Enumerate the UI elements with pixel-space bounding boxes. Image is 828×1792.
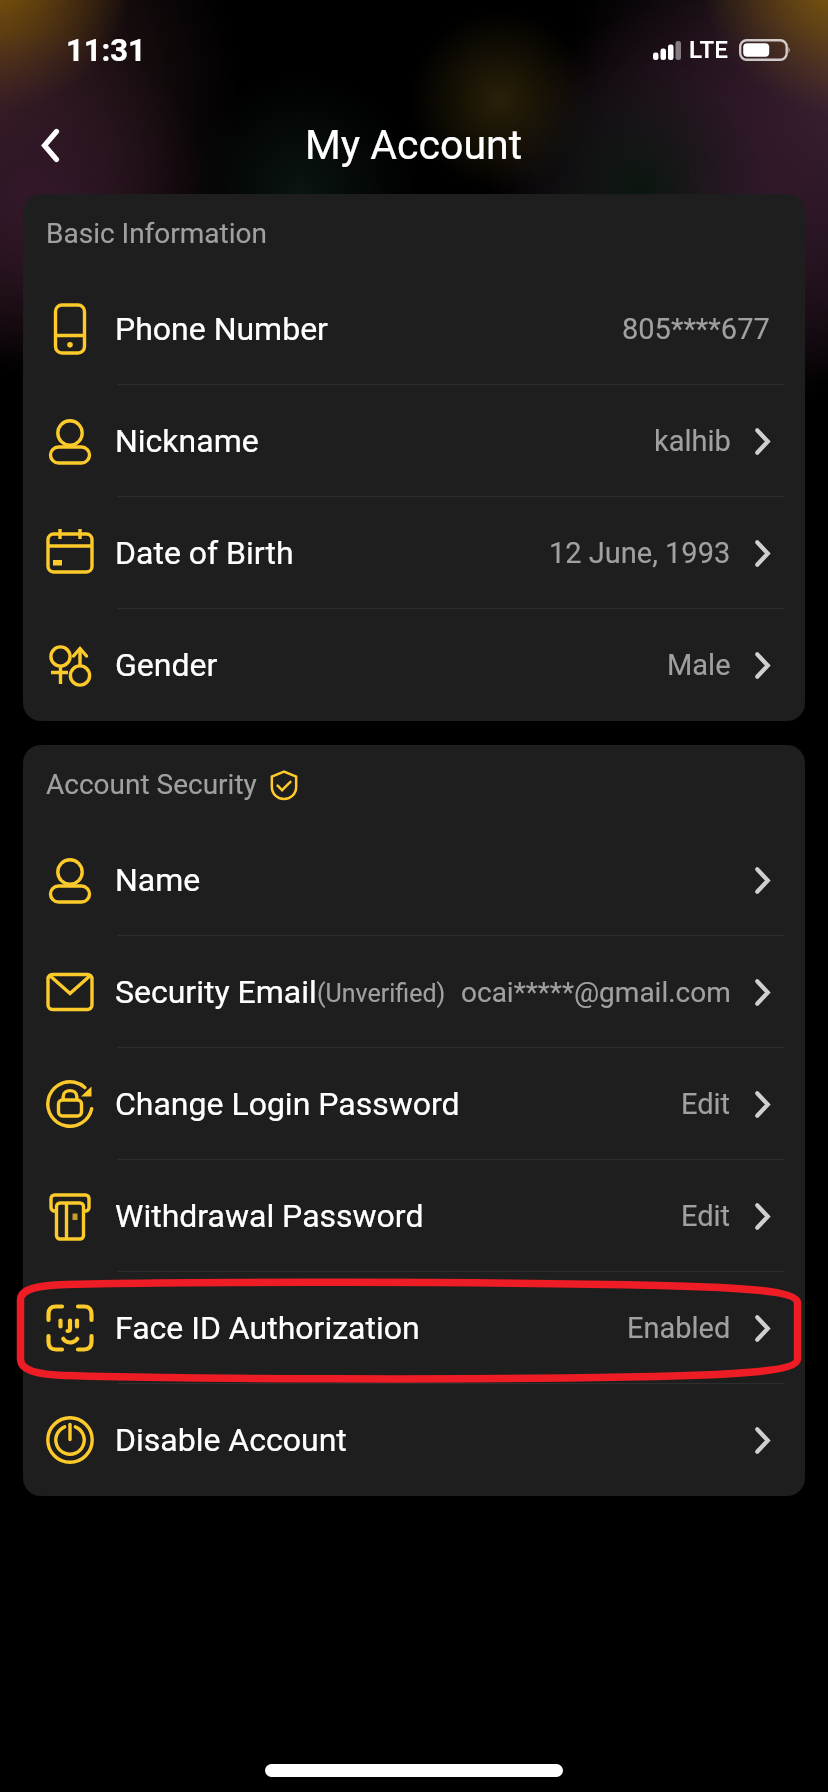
staticText: Nickname [115,422,259,460]
button[interactable]: Security Email [23,936,805,1048]
button[interactable]: Nickname [23,385,805,497]
staticText: Gender [115,646,218,684]
staticText: Withdrawal Password [115,1197,424,1235]
button[interactable]: Date of Birth [23,497,805,609]
staticText: Security Email [115,973,317,1011]
staticText: Name [115,861,201,899]
staticText: Change Login Password [115,1085,460,1123]
button[interactable]: Back [20,115,80,175]
button[interactable]: Disable Account [23,1384,805,1496]
staticText: 805****677 [622,312,770,346]
staticText: Enabled [627,1311,731,1345]
staticText: Disable Account [115,1421,347,1459]
staticText: (Unverified) [317,979,446,1008]
button[interactable]: Name [23,824,805,936]
staticText: LTE [689,36,728,64]
staticText: kalhib [654,424,731,458]
staticText: Edit [681,1199,731,1233]
button[interactable]: Withdrawal Password [23,1160,805,1272]
button[interactable]: Gender [23,609,805,721]
staticText: 12 June, 1993 [549,536,731,570]
staticText: Male [667,648,731,682]
button[interactable]: Phone Number [23,273,805,385]
staticText: 11:31 [66,32,146,68]
staticText: Face ID Authorization [115,1309,420,1347]
staticText: Phone Number [115,310,328,348]
staticText: ocai*****@gmail.com [461,976,731,1009]
staticText: Account Security [46,768,257,801]
button[interactable]: Change Login Password [23,1048,805,1160]
staticText: My Account [305,121,523,169]
staticText: Basic Information [46,217,267,250]
button[interactable]: Face ID Authorization [23,1272,805,1384]
staticText: Date of Birth [115,534,294,572]
staticText: Edit [681,1087,731,1121]
